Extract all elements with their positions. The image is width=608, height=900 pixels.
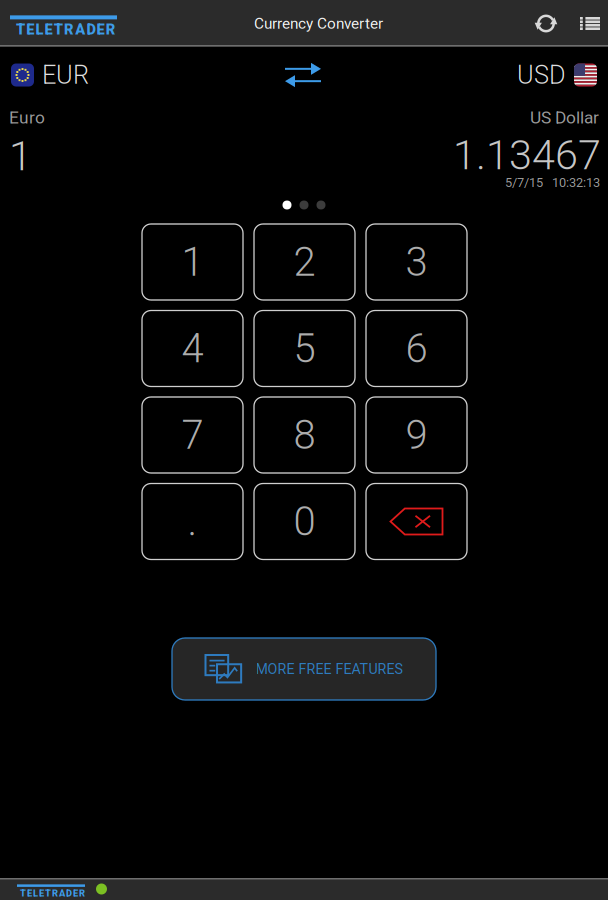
staticText: T — [54, 21, 63, 38]
staticText: R — [79, 888, 85, 899]
staticText: R — [106, 21, 116, 38]
staticText: D — [86, 21, 95, 38]
button[interactable]: 1 — [142, 224, 243, 300]
staticText: 8 — [293, 412, 315, 458]
staticText: A — [59, 888, 65, 899]
staticText: EUR — [42, 60, 89, 90]
staticText: T — [20, 888, 26, 899]
button[interactable]: 4 — [142, 310, 243, 386]
staticText: T — [45, 888, 51, 899]
staticText: L — [33, 888, 38, 899]
button[interactable]: 9 — [366, 397, 467, 473]
staticText: E — [26, 21, 34, 38]
staticText: E — [97, 21, 105, 38]
staticText: 3 — [405, 239, 427, 285]
staticText: E — [27, 888, 32, 899]
staticText: L — [35, 21, 43, 38]
button[interactable]: 8 — [254, 397, 355, 473]
staticText: 1 — [9, 132, 32, 180]
button[interactable]: EUR — [0, 47, 89, 103]
staticText: E — [45, 21, 53, 38]
staticText: 1.13467 — [453, 131, 601, 179]
staticText: R — [52, 888, 58, 899]
staticText: 7 — [181, 412, 203, 458]
staticText: T — [16, 21, 25, 38]
staticText: E — [39, 888, 44, 899]
button[interactable]: 0 — [254, 483, 355, 559]
staticText: Euro — [9, 107, 45, 128]
staticText: USD — [517, 60, 566, 90]
staticText: R — [64, 21, 74, 38]
button[interactable]: USD — [517, 47, 608, 103]
button[interactable]: Delete — [366, 483, 467, 559]
staticText: US Dollar — [530, 107, 599, 128]
staticText: MORE FREE FEATURES — [255, 661, 402, 677]
staticText: . — [187, 498, 197, 545]
button[interactable]: Watchlist — [572, 0, 608, 46]
staticText: 1 — [181, 239, 203, 285]
button[interactable]: MORE FREE FEATURES — [172, 638, 436, 700]
button[interactable]: 3 — [366, 224, 467, 300]
button[interactable]: 2 — [254, 224, 355, 300]
button[interactable]: 6 — [366, 310, 467, 386]
button[interactable]: 5 — [254, 310, 355, 386]
staticText: 0 — [293, 498, 315, 545]
button[interactable]: . — [142, 483, 243, 559]
staticText: E — [73, 888, 78, 899]
staticText: Currency Converter — [254, 14, 383, 32]
staticText: 4 — [181, 325, 203, 372]
button[interactable]: Swap currencies — [273, 47, 333, 103]
staticText: 5 — [293, 325, 315, 372]
staticText: 2 — [293, 239, 315, 285]
staticText: 6 — [405, 325, 427, 372]
button[interactable]: 7 — [142, 397, 243, 473]
staticText: A — [75, 21, 85, 38]
staticText: 9 — [405, 412, 427, 458]
staticText: 5/7/15 10:32:13 — [505, 175, 600, 190]
staticText: D — [66, 888, 72, 899]
button[interactable]: Refresh — [520, 0, 572, 46]
